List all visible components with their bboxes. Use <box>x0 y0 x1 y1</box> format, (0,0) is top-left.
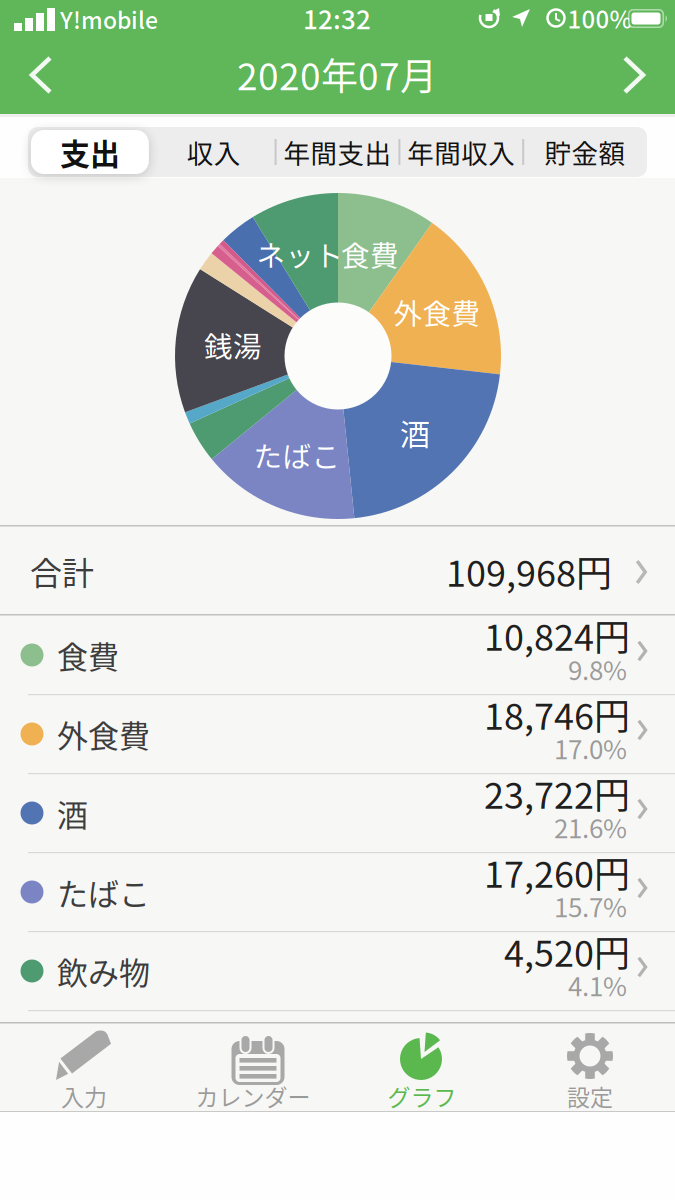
button[interactable]: カレンダー <box>173 1022 333 1118</box>
staticText: 4,520円 <box>504 925 630 977</box>
staticText: たばこ <box>57 870 150 914</box>
staticText: グラフ <box>387 1079 456 1113</box>
staticText: たばこ <box>253 434 340 476</box>
staticText: 外食費 <box>393 291 480 333</box>
staticText: 17,260円 <box>484 846 630 898</box>
staticText: 12:32 <box>303 0 371 37</box>
button[interactable]: たばこ <box>0 852 675 931</box>
button[interactable]: 貯金額 <box>505 127 665 177</box>
button[interactable]: 外食費 <box>0 694 675 773</box>
staticText: 食費 <box>341 233 399 275</box>
staticText: ネット <box>256 233 343 275</box>
staticText: 飲み物 <box>57 949 150 993</box>
staticText: 収入 <box>187 133 241 171</box>
staticText: 合計 <box>30 548 94 594</box>
staticText: 設定 <box>567 1079 613 1113</box>
staticText: 年間支出 <box>283 133 391 171</box>
staticText: 支出 <box>60 130 120 174</box>
staticText: 食費 <box>57 633 119 677</box>
staticText: 銭湯 <box>204 324 262 366</box>
button[interactable]: 支出 <box>29 127 151 177</box>
button[interactable]: 入力 <box>4 1022 164 1118</box>
staticText: 10,824円 <box>484 609 630 661</box>
staticText: 貯金額 <box>545 133 626 171</box>
staticText: 外食費 <box>57 712 150 756</box>
button[interactable]: 設定 <box>510 1022 670 1118</box>
button[interactable]: Previous month <box>20 50 64 100</box>
button[interactable]: 収入 <box>134 127 294 177</box>
staticText: 23,722円 <box>484 767 630 819</box>
staticText: 酒 <box>400 410 430 454</box>
button[interactable]: 年間支出 <box>257 127 417 177</box>
staticText: 100% <box>567 1 632 35</box>
button[interactable]: Next month <box>611 50 655 100</box>
staticText: 18,746円 <box>484 688 630 740</box>
button[interactable]: 食費 <box>0 615 675 694</box>
staticText: カレンダー <box>195 1079 310 1113</box>
staticText: 年間収入 <box>407 133 515 171</box>
staticText: 109,968円 <box>446 545 612 597</box>
staticText: Y!mobile <box>60 2 158 36</box>
staticText: 9.8% <box>568 650 627 688</box>
button[interactable]: 合計 <box>0 526 675 615</box>
button[interactable]: 酒 <box>0 773 675 852</box>
staticText: 17.0% <box>554 729 627 767</box>
staticText: 15.7% <box>554 887 627 925</box>
staticText: 21.6% <box>554 808 627 846</box>
staticText: 2020年07月 <box>237 47 437 101</box>
button[interactable]: 年間収入 <box>381 127 541 177</box>
staticText: 4.1% <box>568 966 627 1004</box>
staticText: 酒 <box>57 791 88 835</box>
button[interactable]: グラフ <box>342 1022 502 1118</box>
button[interactable]: 飲み物 <box>0 931 675 1010</box>
staticText: 入力 <box>61 1079 107 1113</box>
